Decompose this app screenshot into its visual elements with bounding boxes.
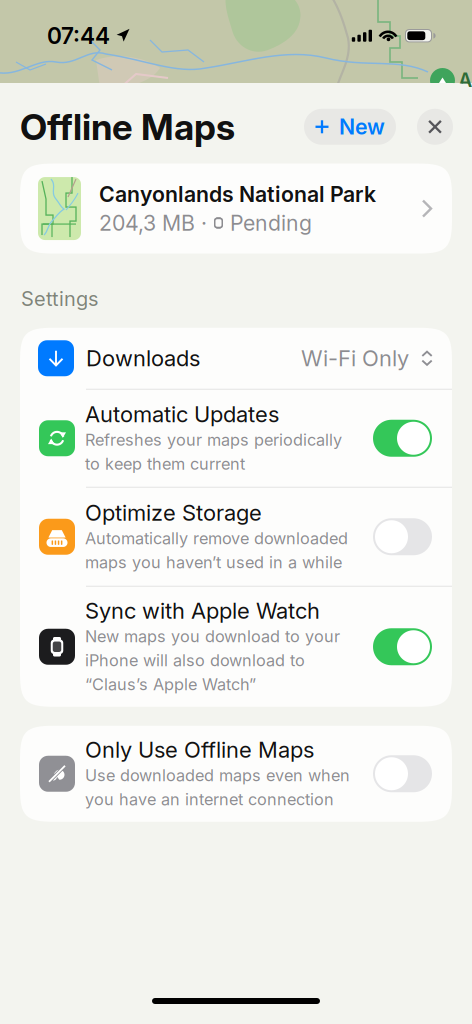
button[interactable]: Close [417,109,453,145]
button[interactable]: New [304,109,396,145]
button[interactable]: Toggle off [373,755,432,792]
staticText: Ar [458,68,472,92]
staticText: Automatic Updates [85,401,279,427]
staticText: maps you haven’t used in a while [85,552,342,572]
staticText: New maps you download to your [85,626,340,646]
staticText: Use downloaded maps even when [85,765,350,785]
staticText: Automatically remove downloaded [85,528,348,548]
button[interactable]: Canyonlands National Park [20,164,452,254]
staticText: 07:44 [47,22,110,49]
staticText: Settings [21,287,98,311]
staticText: “Claus’s Apple Watch” [85,674,256,694]
staticText: New [339,114,385,140]
staticText: Canyonlands National Park [99,181,376,207]
staticText: 204,3 MB · [99,210,207,236]
button[interactable]: Toggle on [373,420,432,457]
button[interactable]: Toggle off [373,518,432,555]
staticText: Pending [230,210,312,236]
staticText: Refreshes your maps periodically [85,430,342,450]
staticText: you have an internet connection [85,789,334,809]
staticText: Sync with Apple Watch [85,597,320,624]
staticText: to keep them current [85,454,245,474]
staticText: Wi-Fi Only [301,345,409,371]
staticText: Offline Maps [20,105,235,149]
button[interactable]: Toggle on [373,628,432,665]
staticText: Downloads [86,345,200,371]
staticText: iPhone will also download to [85,650,305,670]
staticText: Optimize Storage [85,499,262,526]
button[interactable]: Downloads [20,328,452,389]
staticText: Only Use Offline Maps [85,736,314,763]
